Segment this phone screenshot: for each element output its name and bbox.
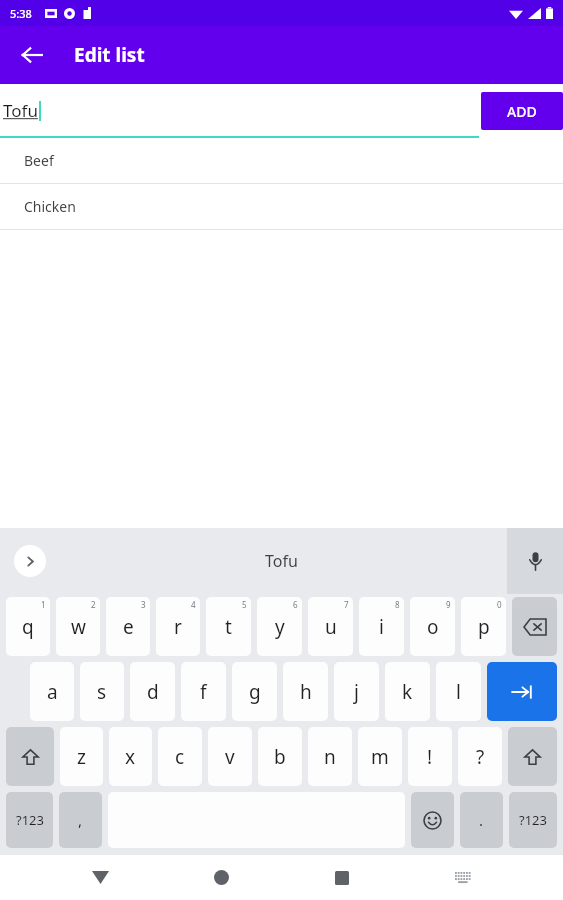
button[interactable]: k xyxy=(385,662,430,721)
staticText: 0 xyxy=(497,599,502,610)
button[interactable]: ! xyxy=(408,727,452,786)
staticText: . xyxy=(479,810,484,830)
staticText: b xyxy=(274,744,286,770)
button[interactable]: Beef xyxy=(0,138,563,183)
button[interactable]: v xyxy=(208,727,252,786)
staticText: a xyxy=(47,679,58,705)
staticText: 1 xyxy=(41,599,46,610)
staticText: ADD xyxy=(507,102,537,121)
staticText: 8 xyxy=(395,599,400,610)
staticText: i xyxy=(379,614,384,640)
staticText: 7 xyxy=(344,599,349,610)
staticText: l xyxy=(456,679,461,705)
staticText: j xyxy=(354,679,359,705)
staticText: r xyxy=(174,614,182,640)
button[interactable]: r xyxy=(156,597,200,656)
staticText: n xyxy=(324,744,336,770)
staticText: , xyxy=(78,810,83,830)
staticText: 5 xyxy=(242,599,247,610)
button[interactable]: Back xyxy=(10,33,54,77)
button[interactable]: ?123 xyxy=(509,792,557,848)
staticText: f xyxy=(200,679,207,705)
staticText: v xyxy=(225,744,235,770)
button[interactable]: h xyxy=(283,662,328,721)
button[interactable]: Hide keyboard xyxy=(76,855,124,900)
staticText: 5:38 xyxy=(10,6,32,21)
button[interactable]: y xyxy=(257,597,302,656)
button[interactable]: Home xyxy=(197,855,245,900)
staticText: z xyxy=(77,744,86,770)
staticText: c xyxy=(175,744,185,770)
button[interactable]: ? xyxy=(458,727,502,786)
staticText: d xyxy=(147,679,159,705)
staticText: Tofu xyxy=(3,99,38,122)
staticText: 3 xyxy=(141,599,146,610)
staticText: g xyxy=(249,679,261,705)
button[interactable]: Backspace xyxy=(512,597,557,656)
staticText: w xyxy=(71,614,86,640)
staticText: ?123 xyxy=(519,811,547,829)
button[interactable]: Tofu xyxy=(0,99,479,124)
button[interactable]: e xyxy=(106,597,150,656)
staticText: Chicken xyxy=(24,197,76,216)
button[interactable]: , xyxy=(59,792,102,848)
staticText: ! xyxy=(427,744,433,770)
button[interactable]: Next xyxy=(487,662,557,721)
button[interactable]: u xyxy=(308,597,353,656)
button[interactable]: x xyxy=(109,727,152,786)
button[interactable]: i xyxy=(359,597,404,656)
button[interactable]: . xyxy=(460,792,503,848)
staticText: ? xyxy=(476,744,485,770)
button[interactable]: b xyxy=(258,727,302,786)
button[interactable]: ADD xyxy=(481,92,563,130)
button[interactable]: m xyxy=(358,727,402,786)
staticText: p xyxy=(478,614,490,640)
button[interactable]: z xyxy=(60,727,103,786)
staticText: m xyxy=(371,744,389,770)
button[interactable]: Tofu xyxy=(265,550,298,572)
staticText: k xyxy=(402,679,413,705)
button[interactable]: p xyxy=(461,597,506,656)
button[interactable]: Recents xyxy=(318,855,366,900)
button[interactable]: c xyxy=(158,727,202,786)
button[interactable]: Switch keyboard xyxy=(439,855,487,900)
button[interactable]: ?123 xyxy=(6,792,53,848)
staticText: 4 xyxy=(191,599,196,610)
staticText: 9 xyxy=(446,599,451,610)
button[interactable]: Voice input xyxy=(507,528,563,594)
button[interactable]: j xyxy=(334,662,379,721)
staticText: 2 xyxy=(91,599,96,610)
staticText: x xyxy=(125,744,136,770)
staticText: q xyxy=(22,614,34,640)
button[interactable]: Shift xyxy=(508,727,557,786)
button[interactable]: w xyxy=(56,597,100,656)
button[interactable]: a xyxy=(30,662,74,721)
staticText: Edit list xyxy=(74,42,145,68)
button[interactable]: Chicken xyxy=(0,184,563,229)
button[interactable]: o xyxy=(410,597,455,656)
button[interactable]: s xyxy=(80,662,124,721)
button[interactable]: Shift xyxy=(6,727,54,786)
button[interactable]: g xyxy=(232,662,277,721)
button[interactable]: l xyxy=(436,662,481,721)
staticText: t xyxy=(225,614,232,640)
staticText: s xyxy=(97,679,107,705)
button[interactable]: Emoji xyxy=(411,792,454,848)
staticText: u xyxy=(325,614,337,640)
button[interactable]: d xyxy=(130,662,175,721)
staticText: o xyxy=(427,614,439,640)
staticText: e xyxy=(123,614,134,640)
staticText: Beef xyxy=(24,151,54,170)
button[interactable]: n xyxy=(308,727,352,786)
button[interactable]: f xyxy=(181,662,226,721)
button[interactable]: q xyxy=(6,597,50,656)
staticText: h xyxy=(300,679,312,705)
staticText: 6 xyxy=(293,599,298,610)
staticText: y xyxy=(275,614,285,640)
button[interactable]: More suggestions xyxy=(14,545,46,577)
staticText: ?123 xyxy=(16,811,44,829)
button[interactable]: t xyxy=(206,597,251,656)
